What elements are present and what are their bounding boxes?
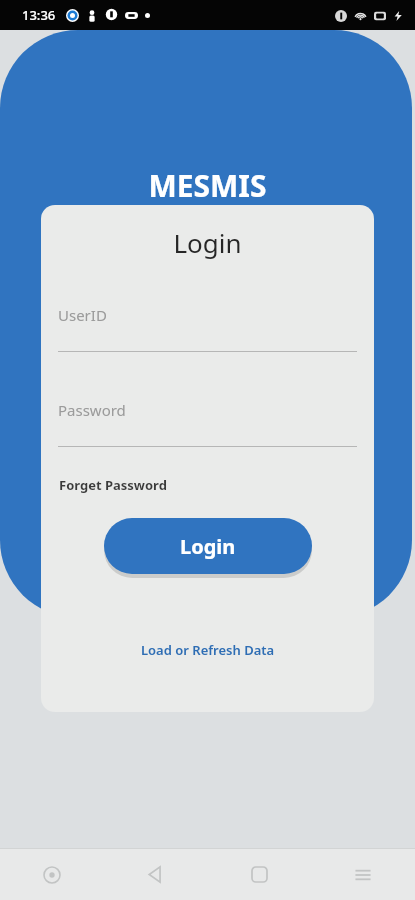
staticText: 13:36: [22, 6, 56, 24]
button[interactable]: Back: [103, 849, 207, 900]
staticText: MESMIS: [0, 165, 415, 206]
button[interactable]: Forget Password: [58, 474, 168, 496]
staticText: Login: [180, 533, 236, 560]
staticText: Password: [58, 400, 126, 420]
staticText: Login: [41, 225, 374, 260]
button[interactable]: Load or Refresh Data: [135, 637, 281, 663]
button[interactable]: Login: [104, 518, 312, 574]
button[interactable]: Assistant: [0, 849, 103, 900]
button[interactable]: Recent apps: [311, 849, 415, 900]
staticText: Load or Refresh Data: [141, 641, 275, 659]
staticText: UserID: [58, 305, 107, 325]
button[interactable]: Home: [207, 849, 311, 900]
staticText: Forget Password: [59, 476, 167, 494]
